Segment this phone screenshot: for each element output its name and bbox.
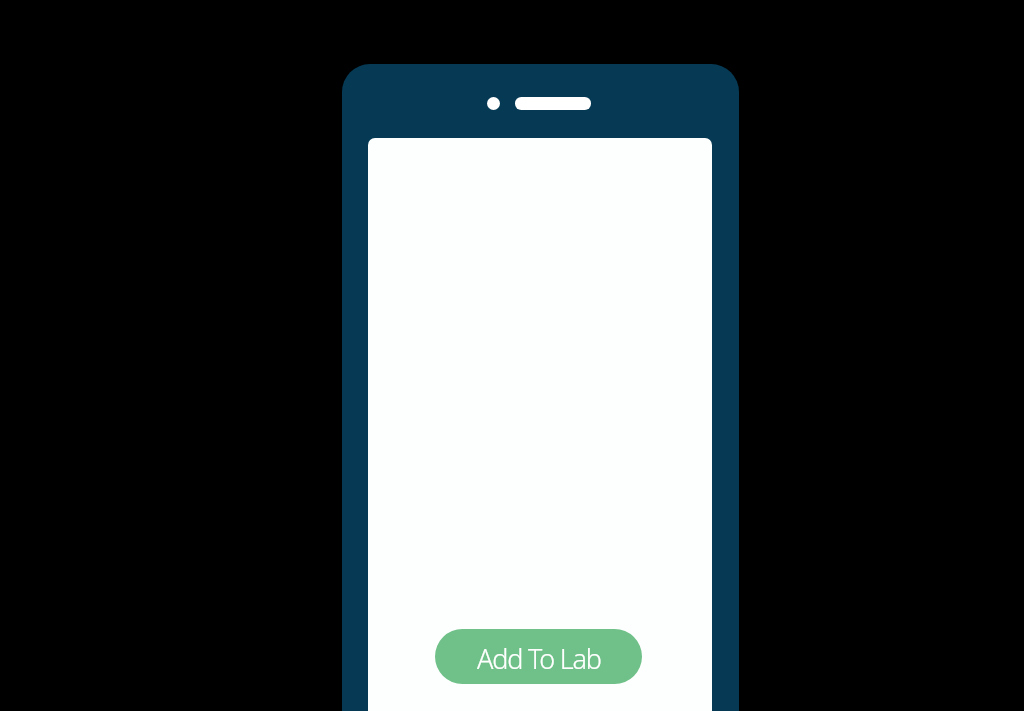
- staticText: Add To Lab: [477, 640, 601, 677]
- button[interactable]: Add To Lab: [435, 629, 642, 684]
